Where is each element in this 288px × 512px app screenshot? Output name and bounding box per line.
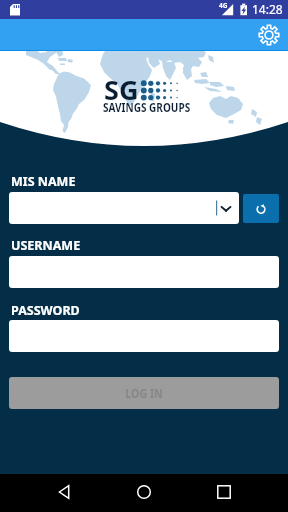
staticText: USERNAME — [11, 237, 81, 254]
staticText: SG — [104, 71, 139, 108]
button[interactable]: Settings — [256, 22, 282, 48]
button[interactable] — [9, 192, 239, 224]
staticText: 4G — [219, 1, 228, 10]
button[interactable] — [9, 320, 279, 352]
button[interactable] — [9, 256, 279, 288]
staticText: LOG IN — [125, 385, 163, 402]
staticText: 14:28 — [252, 1, 283, 17]
staticText: PASSWORD — [11, 302, 80, 319]
button[interactable]: Refresh — [243, 194, 279, 223]
staticText: SAVINGS GROUPS — [103, 98, 190, 116]
button[interactable]: LOG IN — [9, 377, 279, 409]
staticText: MIS NAME — [11, 173, 76, 190]
